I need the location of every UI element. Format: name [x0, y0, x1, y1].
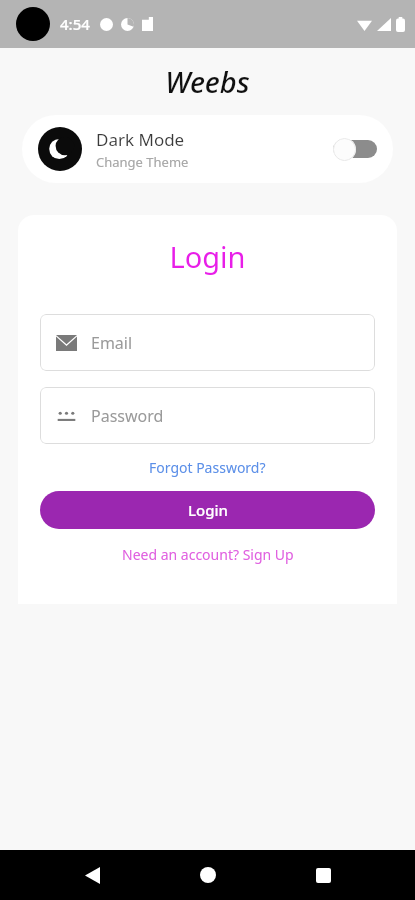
- staticText: Login: [40, 237, 375, 276]
- button[interactable]: Back: [68, 851, 116, 899]
- button[interactable]: Password: [40, 387, 375, 444]
- button[interactable]: Login: [40, 491, 375, 529]
- staticText: Weebs: [0, 62, 415, 101]
- staticText: Password: [91, 405, 164, 427]
- button[interactable]: Home: [184, 851, 232, 899]
- staticText: Need an account? Sign Up: [122, 545, 294, 564]
- button[interactable]: Forgot Password?: [40, 458, 375, 477]
- staticText: Change Theme: [96, 153, 189, 171]
- staticText: 4:54: [60, 14, 90, 34]
- staticText: Dark Mode: [96, 128, 185, 151]
- staticText: Forgot Password?: [149, 458, 266, 477]
- button[interactable]: Toggle dark mode: [333, 137, 377, 161]
- staticText: Email: [91, 332, 133, 354]
- button[interactable]: Dark Mode: [22, 115, 393, 183]
- button[interactable]: Email: [40, 314, 375, 371]
- button[interactable]: Recents: [299, 851, 347, 899]
- staticText: Login: [188, 500, 228, 520]
- button[interactable]: Need an account? Sign Up: [40, 545, 375, 564]
